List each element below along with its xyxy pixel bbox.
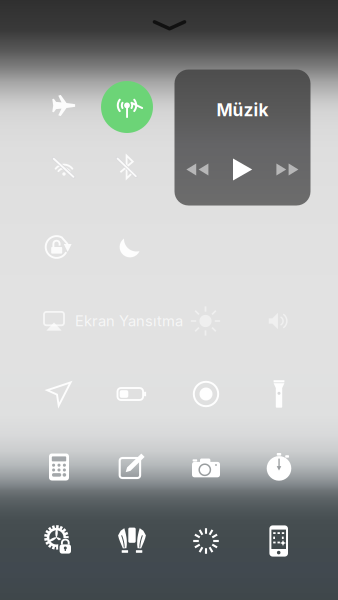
button[interactable]: Timer	[252, 440, 306, 494]
button[interactable]: Airplane Mode	[37, 79, 91, 133]
button[interactable]: Müzik	[174, 69, 310, 205]
button[interactable]: Ekran Yansıtma	[43, 299, 183, 343]
button[interactable]: Flashlight	[252, 367, 306, 421]
button[interactable]: Rotation Lock	[32, 220, 86, 274]
button[interactable]: Do Not Disturb	[103, 220, 157, 274]
button[interactable]: Low Power Mode	[105, 367, 159, 421]
button[interactable]: Cellular Data	[100, 80, 154, 134]
staticText: Ekran Yansıtma	[75, 312, 183, 330]
button[interactable]: Guided Access	[32, 513, 86, 567]
button[interactable]: Bluetooth	[100, 140, 154, 194]
button[interactable]: Camera	[179, 441, 233, 495]
button[interactable]: Activity	[179, 514, 233, 568]
button[interactable]: Screen Recording	[179, 367, 233, 421]
button[interactable]: Volume	[257, 299, 301, 343]
button[interactable]: Notes	[105, 439, 159, 493]
button[interactable]: Wi-Fi	[37, 140, 91, 194]
button[interactable]: Calculator	[32, 440, 86, 494]
staticText: Müzik	[216, 99, 268, 120]
button[interactable]: Brightness	[183, 299, 227, 343]
button[interactable]: AssistiveTouch	[252, 514, 306, 568]
button[interactable]: Hold Device Still	[105, 514, 159, 568]
button[interactable]: Location	[32, 367, 86, 421]
